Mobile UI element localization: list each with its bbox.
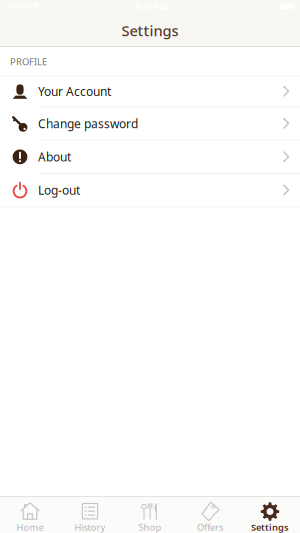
button[interactable]: Log-out <box>0 174 300 206</box>
staticText: Log-out <box>38 182 80 198</box>
staticText: Your Account <box>38 83 111 99</box>
staticText: 3:19 PM <box>134 0 169 12</box>
button[interactable]: Offers <box>180 497 240 533</box>
staticText: PROFILE <box>10 55 47 68</box>
button[interactable]: Shop <box>120 497 180 533</box>
staticText: About <box>38 149 71 165</box>
staticText: History <box>74 521 105 533</box>
staticText: Offers <box>197 521 223 533</box>
staticText: Home <box>16 521 43 533</box>
staticText: Shop <box>138 521 161 533</box>
staticText: Change password <box>38 116 138 131</box>
button[interactable]: History <box>60 497 120 533</box>
button[interactable]: Home <box>0 497 60 533</box>
staticText: Settings <box>251 521 289 533</box>
button[interactable]: Your Account <box>0 76 300 106</box>
button[interactable]: Change password <box>0 107 300 140</box>
staticText: Settings <box>121 21 178 40</box>
button[interactable]: Settings <box>240 497 300 533</box>
button[interactable]: About <box>0 141 300 173</box>
